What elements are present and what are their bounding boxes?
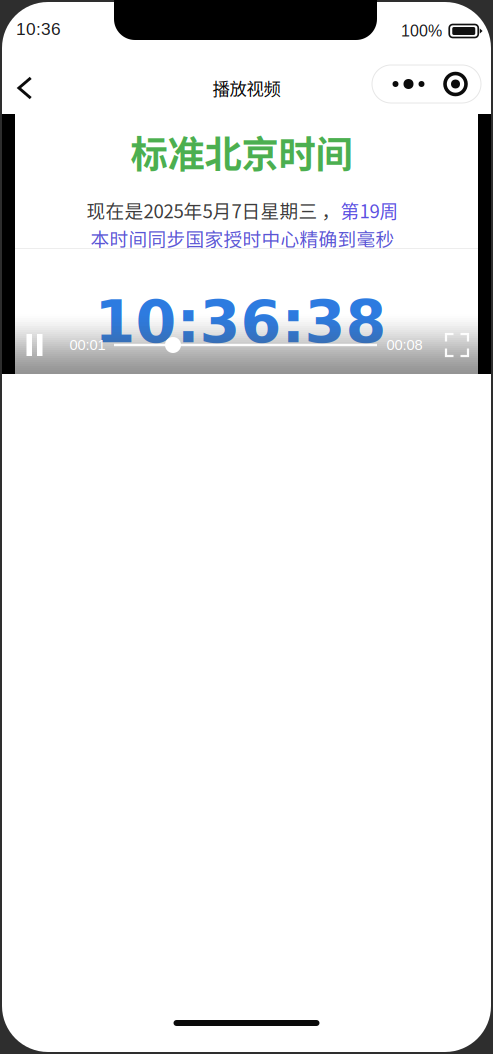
- staticText: 本时间同步国家授时中心精确到毫秒: [90, 224, 394, 251]
- staticText: 00:01: [69, 337, 105, 353]
- button[interactable]: More options: [372, 65, 481, 103]
- staticText: 10:36:38: [94, 288, 386, 356]
- button[interactable]: Back: [0, 63, 50, 113]
- button[interactable]: Full screen: [438, 325, 476, 365]
- staticText: 播放视频: [212, 75, 280, 101]
- staticText: 100%: [401, 22, 442, 40]
- staticText: 00:08: [386, 337, 422, 353]
- staticText: 10:36: [16, 19, 61, 39]
- button[interactable]: Pause: [15, 325, 53, 365]
- staticText: 第19周: [340, 196, 398, 223]
- staticText: 标准北京时间: [130, 125, 352, 179]
- staticText: 现在是2025年5月7日星期三 ，: [86, 196, 340, 223]
